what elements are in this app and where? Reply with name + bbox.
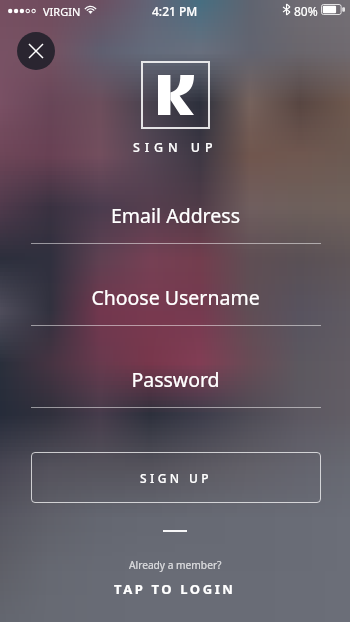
staticText: TAP TO LOGIN [114,580,236,598]
button[interactable]: TAP TO LOGIN [108,578,242,600]
staticText: 80% [294,3,318,19]
staticText: 4:21 PM [152,3,198,19]
staticText: VIRGIN [43,4,81,19]
staticText: Already a member? [129,558,222,572]
button[interactable]: Close [17,32,55,70]
staticText: SIGN UP [133,139,218,156]
staticText: Password [131,366,220,393]
staticText: Choose Username [91,284,260,311]
button[interactable]: SIGN UP [31,452,321,503]
staticText: SIGN UP [140,470,212,486]
staticText: Email Address [111,202,240,229]
